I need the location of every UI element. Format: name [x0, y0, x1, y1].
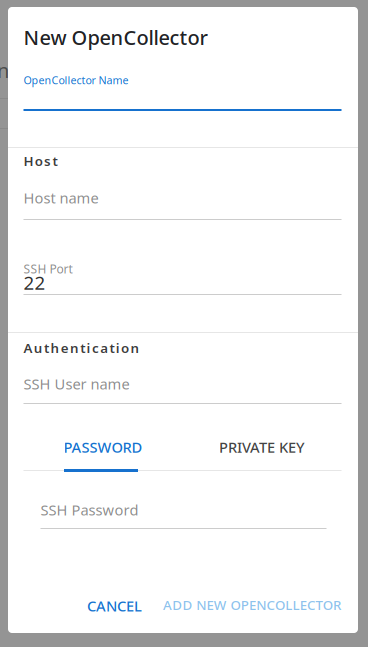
staticText: SSH User name — [23, 374, 129, 393]
button[interactable]: SSH Password — [40, 500, 138, 519]
staticText: PASSWORD — [63, 437, 142, 457]
staticText: Host name — [23, 188, 98, 207]
staticText: Host — [23, 152, 57, 170]
staticText: CANCEL — [87, 596, 142, 615]
staticText: New OpenCollector — [23, 24, 207, 51]
button[interactable]: SSH User name — [23, 374, 129, 393]
staticText: nt — [0, 57, 16, 84]
staticText: PRIVATE KEY — [219, 437, 305, 457]
button[interactable]: ADD NEW OPENCOLLECTOR — [163, 596, 341, 614]
button[interactable]: PRIVATE KEY — [182, 432, 341, 462]
button[interactable]: PASSWORD — [23, 432, 182, 462]
button[interactable]: Host name — [23, 188, 98, 207]
staticText: SSH Password — [40, 500, 138, 519]
button[interactable]: 22 — [23, 270, 45, 295]
staticText: Authentication — [23, 339, 139, 357]
staticText: 22 — [23, 270, 45, 295]
staticText: OpenCollector Name — [23, 73, 128, 87]
staticText: ADD NEW OPENCOLLECTOR — [163, 596, 341, 614]
button[interactable]: OpenCollector Name — [23, 73, 128, 87]
staticText: SSH Port — [23, 261, 72, 277]
button[interactable]: CANCEL — [87, 596, 142, 615]
button[interactable]: New OpenCollector — [23, 24, 207, 51]
